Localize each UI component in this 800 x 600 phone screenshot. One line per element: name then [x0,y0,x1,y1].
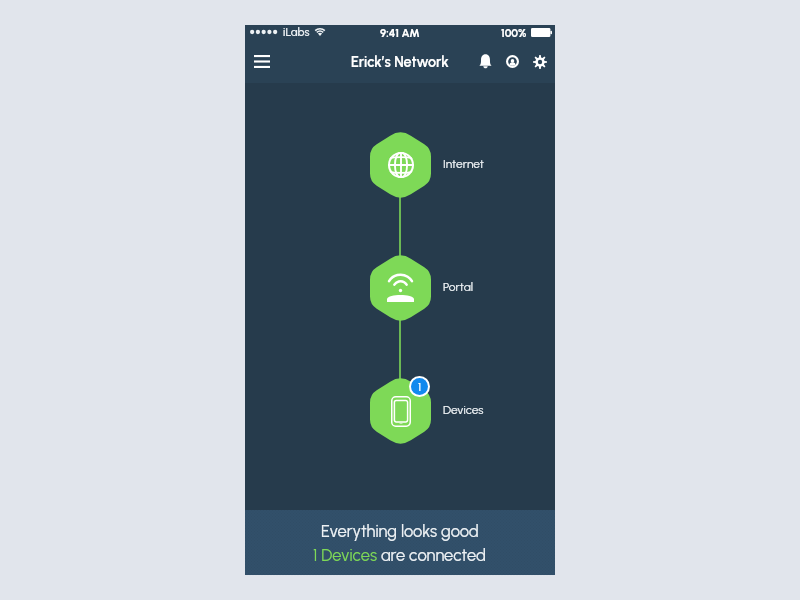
button[interactable]: Account [501,50,524,73]
staticText: Portal [443,280,474,294]
staticText: Erick’s Network [351,53,449,70]
staticText: 9:41 AM [380,26,420,39]
staticText: Devices [443,403,484,417]
staticText: 1 Devices are connected [313,545,487,565]
staticText: Internet [443,157,484,171]
button[interactable] [370,255,431,321]
staticText: 1 [418,380,422,394]
button[interactable]: Settings [528,50,551,73]
button[interactable] [370,132,431,198]
staticText: iLabs [283,25,310,39]
button[interactable] [370,378,431,444]
staticText: Everything looks good [321,521,479,541]
button[interactable]: Notifications [474,50,497,73]
button[interactable]: Menu [248,47,276,75]
staticText: 100% [501,26,527,39]
